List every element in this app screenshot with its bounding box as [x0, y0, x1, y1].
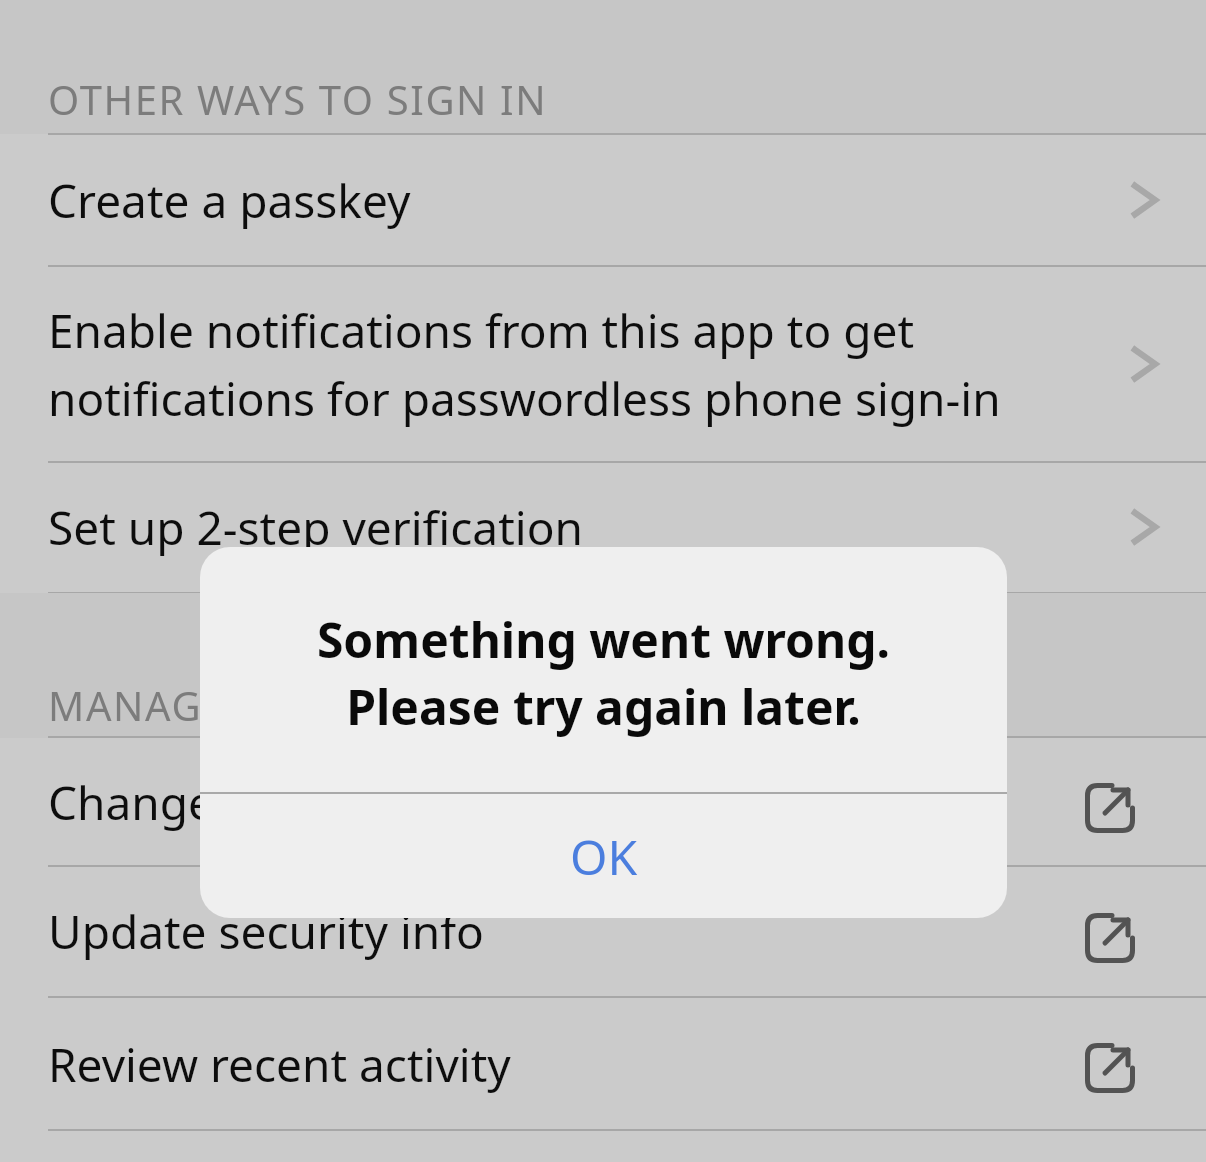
- other: Review recent activity, opens in browser: [1085, 1043, 1135, 1093]
- other: Set up 2-step verification: [1124, 506, 1166, 548]
- button[interactable]: Update security info: [0, 866, 1206, 997]
- staticText: Set up 2-step verification: [48, 496, 583, 559]
- other: Create a passkey: [1124, 179, 1166, 221]
- button[interactable]: Enable notifications from this app to ge…: [0, 266, 1206, 462]
- staticText: Update security info: [48, 900, 484, 963]
- button[interactable]: Review recent activity: [0, 997, 1206, 1131]
- other: Change password, opens in browser: [1085, 783, 1135, 833]
- staticText: Change password: [48, 771, 435, 834]
- other: Update security info, opens in browser: [1085, 913, 1135, 963]
- staticText: Review recent activity: [48, 1033, 511, 1096]
- staticText: OK: [570, 824, 638, 889]
- staticText: Something went wrong. Please try again l…: [200, 607, 1007, 739]
- staticText: MANAGE YOUR ACCOUNT: [48, 678, 562, 732]
- staticText: Create a passkey: [48, 169, 411, 232]
- other: Enable notifications: [1124, 343, 1166, 385]
- button[interactable]: OK: [200, 794, 1007, 918]
- staticText: OTHER WAYS TO SIGN IN: [48, 72, 548, 126]
- button[interactable]: Create a passkey: [0, 134, 1206, 266]
- button[interactable]: Set up 2-step verification: [0, 462, 1206, 593]
- button[interactable]: Change password: [0, 738, 1206, 866]
- staticText: Enable notifications from this app to ge…: [48, 299, 1001, 429]
